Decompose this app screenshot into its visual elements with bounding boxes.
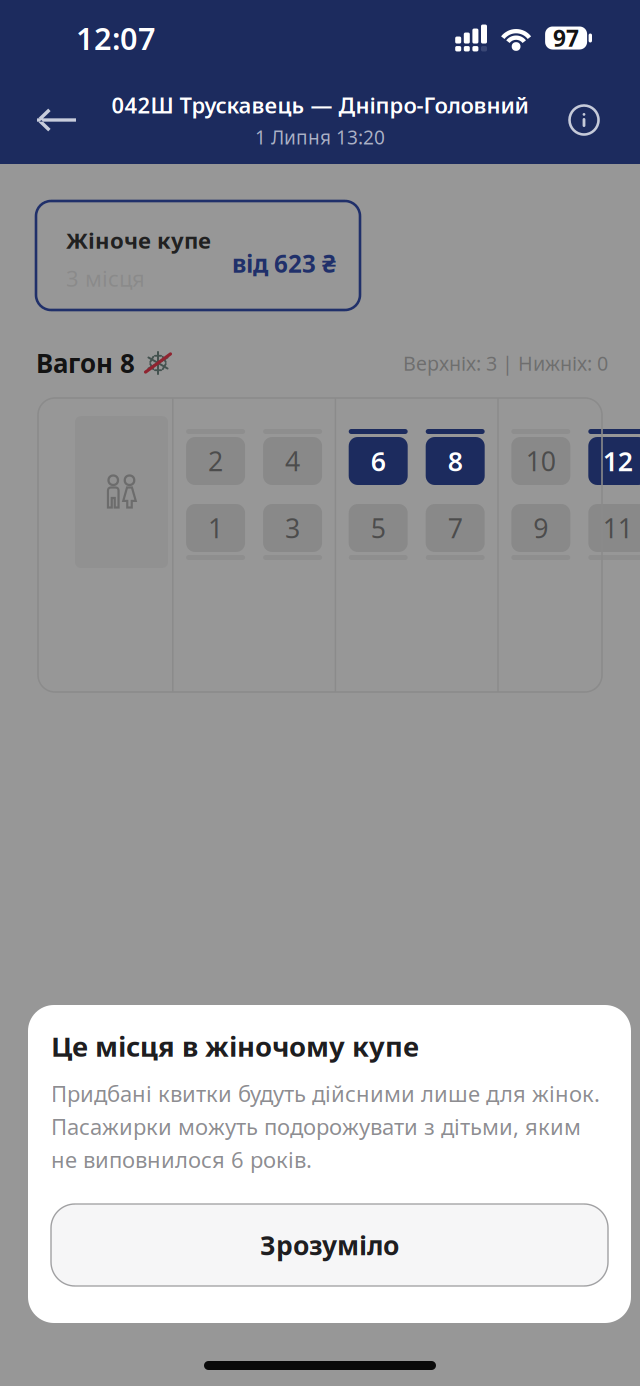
button[interactable]: 9 [511,504,570,560]
staticText: Пасажирки можуть подорожувати з дітьми, … [51,1111,581,1141]
staticText: 11 [603,510,633,546]
staticText: 8 [448,443,463,479]
staticText: 9 [533,510,548,546]
button[interactable]: 5 [349,504,408,560]
staticText: 12:07 [76,17,156,59]
staticText: 1 Липня 13:20 [255,124,385,150]
staticText: 10 [526,443,556,479]
staticText: Жіноче купе [66,225,211,255]
staticText: Верхніх: 3 | Нижніх: 0 [403,350,608,376]
staticText: 6 [371,443,386,479]
button[interactable]: 10 [511,429,570,485]
button[interactable]: 3 [263,504,322,560]
staticText: 7 [448,510,463,546]
button[interactable]: 6 [349,429,408,485]
staticText: 3 [285,510,300,546]
button[interactable]: 7 [426,504,485,560]
staticText: 1 [208,510,223,546]
button[interactable]: 4 [263,429,322,485]
staticText: 12 [603,443,633,479]
staticText: Вагон 8 [36,345,135,381]
staticText: від 623 ₴ [232,247,336,280]
button[interactable]: Back [26,89,86,151]
staticText: Придбані квитки будуть дійсними лише для… [51,1078,600,1108]
button[interactable]: 1 [186,504,245,560]
staticText: 4 [285,443,300,479]
button[interactable]: Зрозуміло [51,1204,608,1286]
button[interactable]: Жіноче купе [36,201,360,310]
button[interactable]: 2 [186,429,245,485]
button[interactable]: 12 [588,429,640,485]
staticText: 3 місця [66,263,145,293]
staticText: не виповнилося 6 років. [51,1144,312,1174]
staticText: 2 [208,443,223,479]
staticText: Зрозуміло [260,1227,399,1263]
button[interactable]: Information [554,89,614,151]
button[interactable]: 11 [588,504,640,560]
staticText: 97 [553,23,579,53]
staticText: 042Ш Трускавець — Дніпро-Головний [111,90,528,120]
button[interactable]: 8 [426,429,485,485]
staticText: 5 [371,510,386,546]
staticText: Це місця в жіночому купе [51,1027,419,1065]
